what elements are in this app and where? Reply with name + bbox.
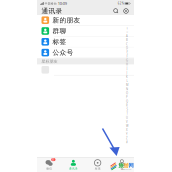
button[interactable]: 公众号 xyxy=(37,47,134,58)
staticText: N xyxy=(126,87,128,91)
staticText: 标签 xyxy=(53,38,67,46)
staticText: 发现 xyxy=(95,167,101,170)
staticText: F xyxy=(126,55,127,58)
staticText: L xyxy=(126,79,127,83)
staticText: X xyxy=(126,128,128,132)
staticText: S xyxy=(126,108,127,111)
staticText: G xyxy=(126,59,128,62)
staticText: 群聊 xyxy=(53,27,67,35)
staticText: D xyxy=(126,46,128,50)
button[interactable]: 群聊 xyxy=(37,26,134,37)
button[interactable]: 通讯录 xyxy=(61,157,85,172)
staticText: 通讯录 xyxy=(69,167,78,170)
button[interactable]: 发现 xyxy=(85,157,110,172)
staticText: K xyxy=(126,75,128,79)
staticText: # xyxy=(126,140,128,144)
staticText: 公众号 xyxy=(53,48,74,57)
staticText: www.lvyou.com xyxy=(121,169,131,170)
staticText: 旅 xyxy=(118,162,123,169)
staticText: 微信 xyxy=(46,167,52,170)
staticText: C xyxy=(126,42,128,46)
staticText: 网 xyxy=(128,162,133,169)
staticText: M xyxy=(126,83,128,87)
button[interactable] xyxy=(37,65,134,75)
staticText: 62% xyxy=(118,2,124,5)
button[interactable]: Add xyxy=(121,7,131,15)
staticText: 中国移动 xyxy=(45,2,57,5)
staticText: ☆ xyxy=(126,31,128,34)
button[interactable]: 新的朋友 xyxy=(37,15,134,26)
staticText: R xyxy=(126,104,128,107)
staticText: 星标朋友 xyxy=(41,59,57,64)
staticText: P xyxy=(126,95,128,99)
staticText: B xyxy=(126,38,128,42)
button[interactable]: 我 xyxy=(110,157,134,172)
staticText: Z xyxy=(126,136,128,140)
staticText: T xyxy=(126,112,127,115)
staticText: 通讯录 xyxy=(41,7,62,15)
staticText: O xyxy=(126,91,128,95)
staticText: W xyxy=(126,124,128,128)
staticText: 10:09 xyxy=(58,1,67,6)
staticText: Y xyxy=(126,132,128,136)
staticText: I xyxy=(126,67,127,70)
staticText: U xyxy=(126,116,128,119)
staticText: A xyxy=(126,34,128,38)
staticText: 8 xyxy=(52,158,54,161)
staticText: ↑ xyxy=(126,27,128,30)
button[interactable]: Search xyxy=(111,7,121,15)
staticText: 游 xyxy=(123,162,128,169)
staticText: H xyxy=(126,63,128,66)
staticText: E xyxy=(126,50,127,54)
staticText: J xyxy=(126,71,127,74)
staticText: V xyxy=(126,120,128,124)
staticText: 我 xyxy=(120,167,123,170)
button[interactable]: 8 xyxy=(37,157,61,172)
button[interactable]: 标签 xyxy=(37,37,134,47)
staticText: 新的朋友 xyxy=(53,16,81,24)
staticText: Q xyxy=(126,100,128,103)
